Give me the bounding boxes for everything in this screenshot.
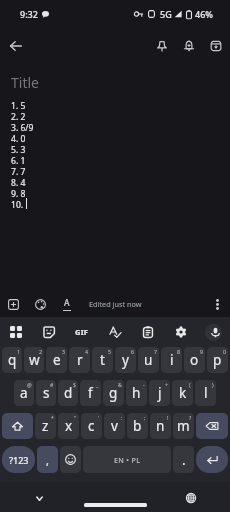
button[interactable]: q xyxy=(2,347,22,373)
staticText: w xyxy=(29,351,40,369)
staticText: h xyxy=(132,384,141,402)
staticText: a xyxy=(20,384,28,402)
staticText: 8. 4 xyxy=(11,177,26,188)
button[interactable]: d xyxy=(58,380,78,406)
staticText: ; xyxy=(144,414,146,421)
button[interactable]: Enter xyxy=(196,446,228,473)
button[interactable]: . xyxy=(173,446,194,473)
button[interactable]: Add reminder xyxy=(176,33,202,59)
staticText: t xyxy=(100,351,105,369)
staticText: 9:32 xyxy=(20,8,38,20)
button[interactable]: Settings xyxy=(164,317,197,347)
button[interactable]: Emoji xyxy=(60,446,81,473)
staticText: ?123 xyxy=(9,454,29,466)
staticText: 2 xyxy=(39,348,42,355)
button[interactable]: t xyxy=(92,347,113,373)
staticText: 9. 8 xyxy=(11,188,26,199)
button[interactable]: Symbols xyxy=(2,446,35,473)
button[interactable]: v xyxy=(104,413,125,439)
staticText: ? xyxy=(189,414,192,421)
button[interactable]: GIF xyxy=(65,317,98,347)
button[interactable]: f xyxy=(80,380,101,406)
button[interactable]: Add content xyxy=(2,293,24,315)
staticText: 7. 7 xyxy=(11,166,26,177)
staticText: p xyxy=(213,351,222,369)
button[interactable]: Shift xyxy=(2,413,33,439)
staticText: r xyxy=(77,351,83,369)
button[interactable]: Change keyboard language xyxy=(181,488,201,508)
staticText: EN • PL xyxy=(114,455,141,465)
staticText: z xyxy=(42,417,49,435)
staticText: g xyxy=(109,384,118,402)
button[interactable]: k xyxy=(172,380,193,406)
button[interactable]: o xyxy=(184,347,205,373)
button[interactable]: u xyxy=(138,347,159,373)
button[interactable]: Pin note xyxy=(149,33,175,59)
staticText: 8 xyxy=(177,348,180,355)
staticText: GIF xyxy=(75,327,89,337)
staticText: 5 xyxy=(108,348,111,355)
button[interactable]: w xyxy=(24,347,44,373)
button[interactable]: Comma xyxy=(37,446,58,473)
staticText: o xyxy=(190,351,199,369)
button[interactable]: l xyxy=(195,380,216,406)
button[interactable]: Translate xyxy=(98,317,131,347)
button[interactable]: i xyxy=(161,347,182,373)
staticText: : xyxy=(121,414,123,421)
button[interactable]: x xyxy=(58,413,79,439)
staticText: e xyxy=(53,351,61,369)
button[interactable]: j xyxy=(149,380,170,406)
staticText: & xyxy=(118,381,122,388)
button[interactable]: c xyxy=(81,413,102,439)
staticText: " xyxy=(74,414,77,421)
staticText: Title xyxy=(11,73,39,92)
button[interactable]: b xyxy=(127,413,148,439)
button[interactable]: Apps xyxy=(0,317,32,347)
staticText: 9 xyxy=(200,348,203,355)
button[interactable]: h xyxy=(126,380,147,406)
staticText: v xyxy=(111,417,118,435)
staticText: x xyxy=(65,417,73,435)
button[interactable]: n xyxy=(150,413,171,439)
button[interactable]: m xyxy=(173,413,194,439)
button[interactable]: g xyxy=(103,380,124,406)
staticText: q xyxy=(8,351,17,369)
button[interactable]: y xyxy=(115,347,136,373)
staticText: c xyxy=(88,417,95,435)
button[interactable]: Clipboard xyxy=(131,317,164,347)
button[interactable]: r xyxy=(69,347,90,373)
button[interactable]: p xyxy=(207,347,228,373)
staticText: 4 xyxy=(85,348,88,355)
button[interactable]: Stickers xyxy=(32,317,65,347)
staticText: Edited just now xyxy=(89,299,142,309)
staticText: d xyxy=(64,384,73,402)
staticText: A xyxy=(64,297,70,309)
button[interactable]: Archive xyxy=(203,33,229,59)
staticText: f xyxy=(88,384,93,402)
staticText: m xyxy=(177,417,190,435)
button[interactable]: Change colour xyxy=(29,293,51,315)
staticText: 5G xyxy=(160,8,172,20)
staticText: k xyxy=(179,384,187,402)
button[interactable]: Navigate up xyxy=(3,33,29,59)
button[interactable]: Text formatting xyxy=(56,293,78,315)
button[interactable]: Hide keyboard xyxy=(29,488,49,508)
staticText: 6 xyxy=(131,348,134,355)
button[interactable]: Backspace xyxy=(196,413,228,439)
staticText: 0 xyxy=(223,348,226,355)
staticText: 6. 1 xyxy=(11,155,26,166)
button[interactable]: e xyxy=(46,347,67,373)
button[interactable]: z xyxy=(35,413,56,439)
staticText: s xyxy=(43,384,50,402)
staticText: u xyxy=(144,351,153,369)
button[interactable]: More options xyxy=(206,293,228,315)
staticText: # xyxy=(50,381,54,388)
staticText: n xyxy=(156,417,165,435)
button[interactable]: Voice input xyxy=(197,317,230,347)
button[interactable]: Space xyxy=(83,446,171,473)
staticText: ) xyxy=(212,381,214,388)
button[interactable]: s xyxy=(36,380,56,406)
staticText: j xyxy=(158,384,162,402)
staticText: b xyxy=(133,417,142,435)
button[interactable]: a xyxy=(14,380,34,406)
